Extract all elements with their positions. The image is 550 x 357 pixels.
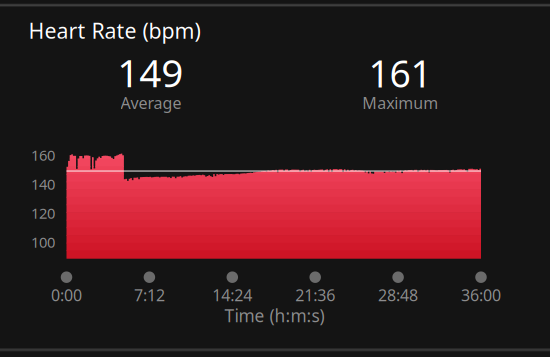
staticText: 160	[31, 145, 55, 165]
staticText: 120	[31, 203, 55, 223]
staticText: 140	[31, 174, 55, 194]
staticText: 28:48	[378, 284, 418, 306]
staticText: 7:12	[134, 284, 165, 306]
staticText: Maximum	[362, 92, 438, 113]
staticText: 149	[117, 47, 183, 98]
staticText: 161	[368, 48, 431, 98]
staticText: Average	[120, 92, 181, 113]
staticText: 0:00	[51, 284, 82, 306]
staticText: 21:36	[295, 284, 335, 306]
staticText: Time (h:m:s)	[224, 304, 324, 327]
staticText: Heart Rate (bpm)	[28, 16, 200, 45]
staticText: 36:00	[461, 284, 501, 306]
staticText: 14:24	[212, 284, 252, 306]
staticText: 100	[31, 232, 55, 252]
